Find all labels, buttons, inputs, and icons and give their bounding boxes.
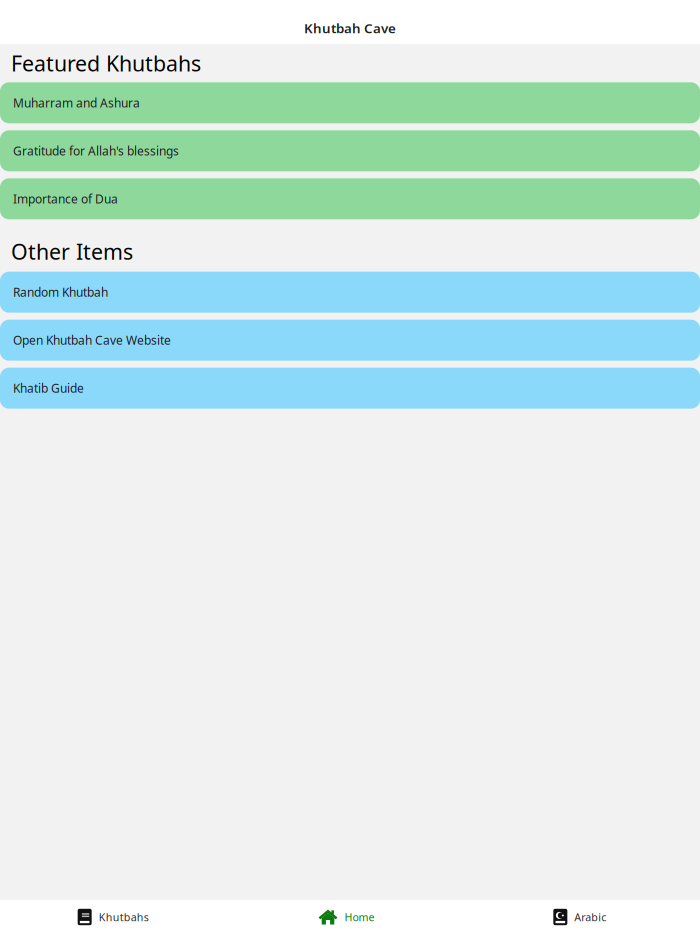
- button[interactable]: Gratitude for Allah's blessings: [0, 130, 700, 171]
- staticText: Random Khutbah: [13, 284, 108, 300]
- button[interactable]: Home: [233, 900, 467, 934]
- button[interactable]: Arabic: [467, 900, 700, 934]
- staticText: Gratitude for Allah's blessings: [13, 143, 179, 159]
- staticText: Khatib Guide: [13, 380, 84, 396]
- button[interactable]: Open Khutbah Cave Website: [0, 320, 700, 361]
- staticText: Arabic: [574, 910, 606, 924]
- staticText: Muharram and Ashura: [13, 95, 140, 111]
- staticText: Open Khutbah Cave Website: [13, 332, 171, 348]
- button[interactable]: Khatib Guide: [0, 368, 700, 409]
- staticText: Khutbahs: [99, 910, 149, 924]
- button[interactable]: Khutbahs: [0, 900, 233, 934]
- button[interactable]: Muharram and Ashura: [0, 82, 700, 123]
- button[interactable]: Random Khutbah: [0, 272, 700, 313]
- staticText: Khutbah Cave: [304, 19, 396, 37]
- button[interactable]: Importance of Dua: [0, 178, 700, 219]
- staticText: Other Items: [11, 237, 133, 266]
- staticText: Importance of Dua: [13, 191, 118, 207]
- staticText: Home: [344, 910, 374, 924]
- staticText: Featured Khutbahs: [11, 49, 201, 77]
